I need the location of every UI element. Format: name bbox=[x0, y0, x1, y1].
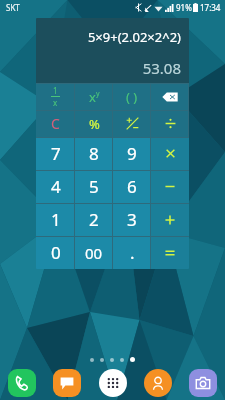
button[interactable]: Apps bbox=[99, 369, 127, 397]
staticText: 91% bbox=[176, 2, 192, 13]
button[interactable]: Phone bbox=[8, 369, 36, 397]
staticText: 7 bbox=[51, 142, 61, 165]
staticText: 0 bbox=[51, 241, 61, 264]
button[interactable]: operator bbox=[151, 203, 189, 236]
staticText: 9 bbox=[127, 142, 137, 165]
button[interactable]: 1 bbox=[36, 83, 75, 110]
staticText: 5 bbox=[89, 175, 99, 198]
button[interactable]: operator bbox=[151, 236, 189, 269]
button[interactable]: ( ) bbox=[113, 83, 151, 110]
button[interactable]: 2 bbox=[75, 203, 113, 236]
staticText: C bbox=[51, 114, 60, 133]
button[interactable]: 9 bbox=[113, 137, 151, 170]
staticText: % bbox=[89, 115, 100, 133]
button[interactable]: 8 bbox=[75, 137, 113, 170]
staticText: 00 bbox=[85, 243, 103, 263]
button[interactable]: operator bbox=[151, 137, 189, 170]
button[interactable]: 7 bbox=[36, 137, 75, 170]
button[interactable]: Contacts bbox=[144, 369, 172, 397]
staticText: x bbox=[89, 88, 96, 106]
staticText: x bbox=[53, 97, 58, 108]
button[interactable]: % bbox=[75, 110, 113, 137]
button[interactable]: Messages bbox=[53, 369, 81, 397]
staticText: 1 bbox=[53, 85, 58, 96]
button[interactable]: operator bbox=[151, 170, 189, 203]
staticText: 6 bbox=[127, 175, 137, 198]
staticText: 53.08 bbox=[44, 58, 181, 78]
staticText: SKT bbox=[6, 2, 20, 13]
staticText: 8 bbox=[89, 142, 99, 165]
button[interactable]: Camera bbox=[189, 369, 217, 397]
button[interactable]: 3 bbox=[113, 203, 151, 236]
staticText: 17:34 bbox=[200, 2, 221, 13]
button[interactable]: 0 bbox=[36, 236, 75, 269]
staticText: 4 bbox=[51, 175, 61, 198]
staticText: y bbox=[96, 89, 100, 99]
button[interactable]: 4 bbox=[36, 170, 75, 203]
button[interactable]: x bbox=[75, 83, 113, 110]
staticText: 3 bbox=[127, 208, 137, 231]
button[interactable]: Backspace bbox=[151, 83, 189, 110]
staticText: ( ) bbox=[126, 88, 138, 106]
staticText: . bbox=[130, 241, 135, 264]
button[interactable]: 6 bbox=[113, 170, 151, 203]
button[interactable]: 5 bbox=[75, 170, 113, 203]
button[interactable] bbox=[151, 110, 189, 137]
button[interactable]: . bbox=[113, 236, 151, 269]
staticText: 5×9+(2.02×2^2) bbox=[44, 28, 181, 46]
button[interactable]: 00 bbox=[75, 236, 113, 269]
button[interactable]: C bbox=[36, 110, 75, 137]
button[interactable] bbox=[113, 110, 151, 137]
staticText: 2 bbox=[89, 208, 99, 231]
staticText: 1 bbox=[51, 208, 61, 231]
button[interactable]: 1 bbox=[36, 203, 75, 236]
